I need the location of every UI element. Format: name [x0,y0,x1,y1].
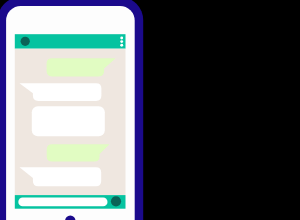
button[interactable]: Message from me: Hi there [47,58,116,76]
button[interactable]: More options [117,33,126,49]
button[interactable]: Contact avatar [21,37,30,46]
button[interactable]: Message: Hello! [20,83,102,101]
button[interactable]: Message: How are you doing today? [32,106,105,136]
button[interactable]: Home [65,215,75,220]
button[interactable]: Message from me: All good [47,144,110,161]
button[interactable]: Message: Great, talk soon [20,167,102,186]
button[interactable]: Type a message [18,198,107,207]
button[interactable]: Send [111,196,121,206]
